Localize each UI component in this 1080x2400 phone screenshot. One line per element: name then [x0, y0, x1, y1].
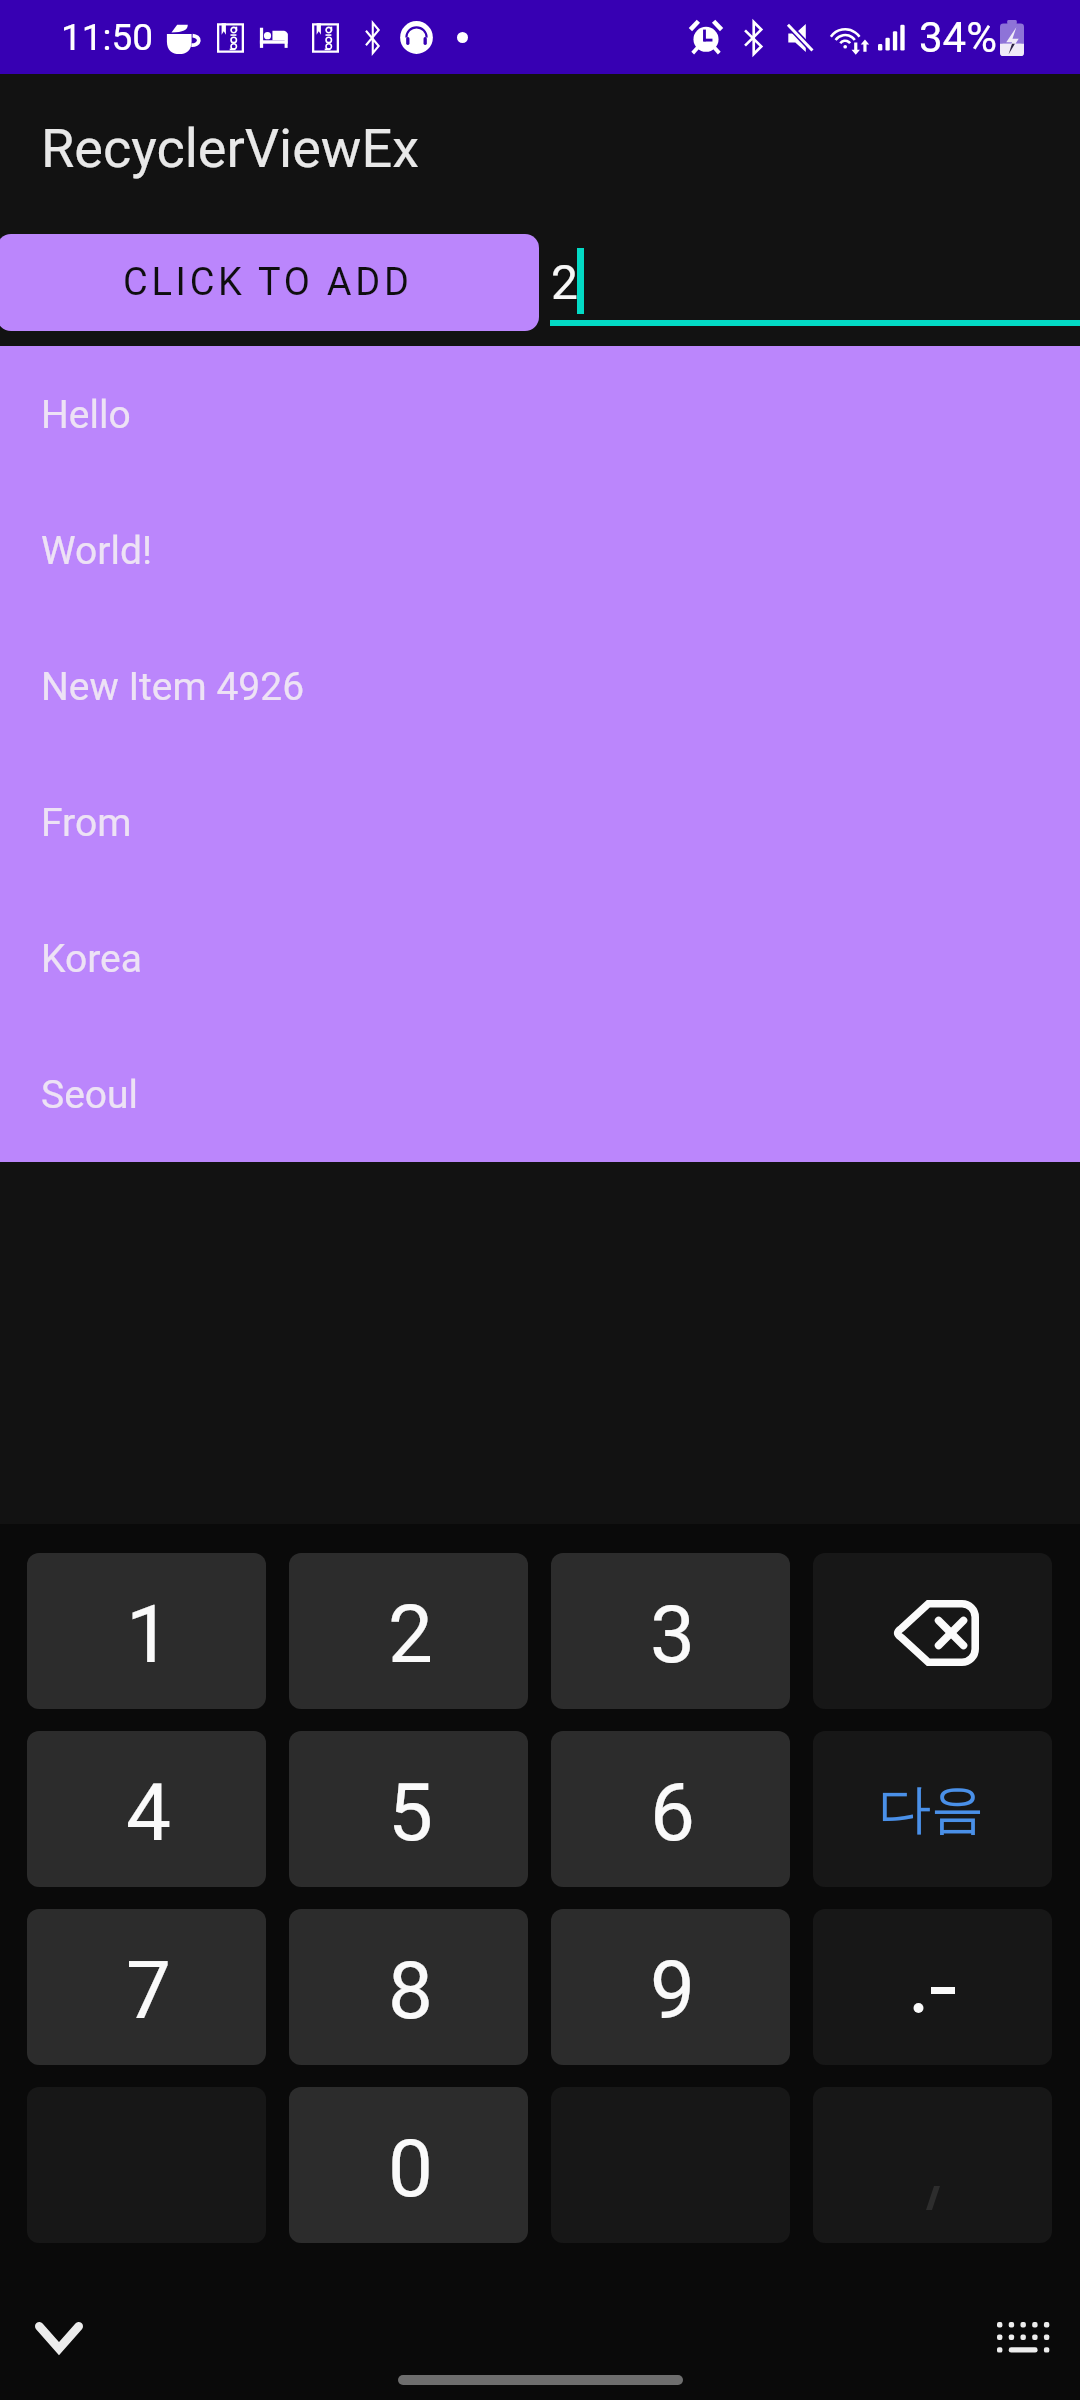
- button[interactable]: 2: [550, 234, 1080, 346]
- staticText: New Item 4926: [41, 664, 305, 710]
- staticText: 4: [126, 1766, 171, 1860]
- button[interactable]: Hide keyboard: [15, 2300, 103, 2374]
- staticText: Hello: [41, 392, 131, 438]
- button[interactable]: 7: [27, 1909, 266, 2065]
- staticText: Seoul: [41, 1072, 139, 1118]
- staticText: 다음: [878, 1776, 984, 1843]
- staticText: 34%: [919, 13, 997, 62]
- staticText: RecyclerViewEx: [41, 117, 419, 180]
- button[interactable]: 3: [551, 1553, 790, 1709]
- button[interactable]: [813, 1553, 1052, 1709]
- button[interactable]: [813, 1909, 1052, 2065]
- staticText: World!: [41, 528, 153, 574]
- staticText: 6: [650, 1766, 695, 1860]
- button[interactable]: 다음: [813, 1731, 1052, 1887]
- staticText: 3: [650, 1588, 695, 1682]
- staticText: From: [41, 800, 132, 846]
- staticText: Korea: [41, 936, 142, 982]
- staticText: 9: [650, 1944, 695, 2038]
- staticText: CLICK TO ADD: [123, 260, 413, 305]
- button[interactable]: 1: [27, 1553, 266, 1709]
- staticText: 1: [126, 1588, 171, 1682]
- button[interactable]: 6: [551, 1731, 790, 1887]
- staticText: 7: [126, 1944, 171, 2038]
- button[interactable]: 9: [551, 1909, 790, 2065]
- staticText: 2: [388, 1588, 433, 1682]
- button[interactable]: CLICK TO ADD: [0, 234, 539, 331]
- staticText: 5: [388, 1766, 433, 1860]
- button[interactable]: 5: [289, 1731, 528, 1887]
- button[interactable]: 4: [27, 1731, 266, 1887]
- button[interactable]: Hello: [0, 346, 1080, 482]
- staticText: 2: [551, 254, 578, 310]
- button[interactable]: World!: [0, 482, 1080, 618]
- button[interactable]: 2: [289, 1553, 528, 1709]
- button[interactable]: 0: [289, 2087, 528, 2243]
- button[interactable]: From: [0, 754, 1080, 890]
- staticText: 11:50: [61, 16, 154, 59]
- button[interactable]: 8: [289, 1909, 528, 2065]
- button[interactable]: Change keyboard: [970, 2300, 1074, 2374]
- staticText: 0: [388, 2122, 433, 2216]
- button[interactable]: Korea: [0, 890, 1080, 1026]
- button[interactable]: Seoul: [0, 1026, 1080, 1162]
- button[interactable]: New Item 4926: [0, 618, 1080, 754]
- staticText: 8: [388, 1944, 433, 2038]
